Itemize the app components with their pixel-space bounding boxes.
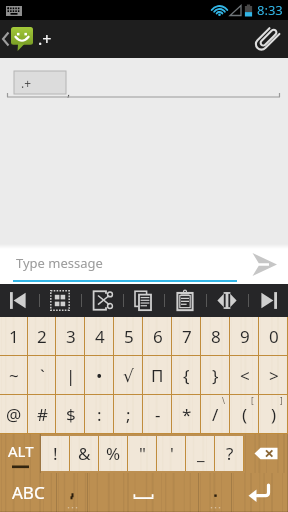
- button[interactable]: &: [70, 436, 99, 471]
- button[interactable]: 8: [201, 317, 230, 356]
- button[interactable]: @: [0, 395, 28, 434]
- staticText: $: [66, 403, 76, 426]
- button[interactable]: Attach: [244, 20, 288, 58]
- button[interactable]: {: [172, 356, 201, 395]
- staticText: ,: [67, 83, 71, 99]
- staticText: ABC: [12, 481, 45, 504]
- staticText: %: [106, 442, 121, 465]
- button[interactable]: ~: [0, 356, 28, 395]
- button[interactable]: ?: [215, 436, 244, 471]
- staticText: 8: [211, 325, 221, 348]
- staticText: -: [155, 403, 161, 426]
- button[interactable]: Space: [199, 473, 232, 512]
- button[interactable]: #: [28, 395, 56, 434]
- staticText: •: [96, 364, 103, 387]
- staticText: *: [182, 403, 192, 426]
- staticText: |: [66, 364, 76, 387]
- button[interactable]: *: [172, 395, 201, 434]
- button[interactable]: `: [28, 356, 56, 395]
- staticText: ): [271, 403, 277, 426]
- staticText: √: [123, 366, 134, 386]
- staticText: /: [212, 403, 219, 426]
- staticText: (: [242, 403, 248, 426]
- button[interactable]: ': [157, 436, 186, 471]
- button[interactable]: 1: [0, 317, 28, 356]
- button[interactable]: (: [230, 395, 259, 434]
- button[interactable]: |: [56, 356, 85, 395]
- staticText: `: [40, 364, 45, 387]
- staticText: 1: [9, 325, 19, 348]
- staticText: 3: [66, 325, 76, 348]
- staticText: 8:33: [257, 1, 283, 19]
- staticText: _: [197, 442, 205, 465]
- staticText: ': [170, 442, 174, 465]
- staticText: Type message: [16, 254, 103, 272]
- button[interactable]: $: [56, 395, 85, 434]
- button[interactable]: ": [128, 436, 157, 471]
- staticText: .+: [21, 75, 32, 91]
- button[interactable]: Navigate up: [0, 20, 52, 58]
- button[interactable]: }: [201, 356, 230, 395]
- button[interactable]: ;: [114, 395, 143, 434]
- button[interactable]: !: [41, 436, 70, 471]
- button[interactable]: 9: [230, 317, 259, 356]
- staticText: <: [240, 364, 250, 387]
- staticText: .+: [38, 28, 52, 50]
- staticText: :: [97, 403, 102, 426]
- staticText: !: [53, 442, 58, 465]
- button[interactable]: Select all: [43, 284, 77, 317]
- staticText: 6: [153, 325, 163, 348]
- button[interactable]: Go to start: [1, 284, 35, 317]
- staticText: @: [6, 403, 22, 426]
- staticText: 4: [95, 325, 105, 348]
- button[interactable]: 7: [172, 317, 201, 356]
- staticText: &: [78, 442, 91, 465]
- button[interactable]: •: [85, 356, 114, 395]
- button[interactable]: Select text: [210, 284, 244, 317]
- button[interactable]: <: [230, 356, 259, 395]
- button[interactable]: √: [114, 356, 143, 395]
- button[interactable]: Send: [240, 244, 288, 284]
- button[interactable]: 3: [56, 317, 85, 356]
- staticText: ALT: [8, 441, 34, 461]
- button[interactable]: Space: [88, 473, 199, 512]
- button[interactable]: %: [99, 436, 128, 471]
- staticText: 9: [240, 325, 250, 348]
- button[interactable]: ABC: [0, 473, 57, 512]
- button[interactable]: /: [201, 395, 230, 434]
- staticText: ~: [9, 364, 19, 387]
- staticText: ;: [126, 403, 131, 426]
- button[interactable]: Space: [244, 434, 288, 473]
- button[interactable]: Space: [57, 473, 88, 512]
- button[interactable]: 4: [85, 317, 114, 356]
- staticText: 2: [37, 325, 47, 348]
- staticText: ?: [226, 442, 234, 465]
- button[interactable]: .+: [14, 71, 66, 94]
- button[interactable]: Go to end: [252, 284, 286, 317]
- button[interactable]: ): [259, 395, 288, 434]
- staticText: \: [222, 395, 225, 406]
- button[interactable]: >: [259, 356, 288, 395]
- button[interactable]: Paste: [168, 284, 202, 317]
- staticText: 7: [182, 325, 192, 348]
- button[interactable]: _: [186, 436, 215, 471]
- staticText: #: [37, 403, 48, 426]
- button[interactable]: :: [85, 395, 114, 434]
- staticText: 0: [269, 325, 279, 348]
- staticText: {: [183, 364, 190, 387]
- button[interactable]: 5: [114, 317, 143, 356]
- button[interactable]: Copy: [126, 284, 160, 317]
- button[interactable]: 0: [259, 317, 288, 356]
- staticText: ]: [280, 395, 283, 406]
- staticText: ": [139, 442, 146, 465]
- button[interactable]: Space: [232, 473, 288, 512]
- button[interactable]: ALT: [0, 434, 41, 473]
- button[interactable]: -: [143, 395, 172, 434]
- staticText: 5: [124, 325, 134, 348]
- button[interactable]: Cut: [85, 284, 119, 317]
- staticText: }: [212, 364, 219, 387]
- staticText: >: [269, 364, 279, 387]
- button[interactable]: 2: [28, 317, 56, 356]
- button[interactable]: Π: [143, 356, 172, 395]
- button[interactable]: 6: [143, 317, 172, 356]
